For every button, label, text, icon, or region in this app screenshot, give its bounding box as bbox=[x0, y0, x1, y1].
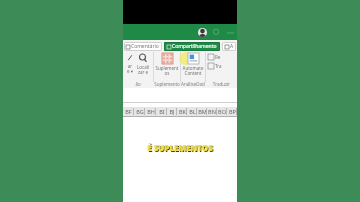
staticText: BH bbox=[147, 108, 155, 115]
staticText: BL bbox=[189, 108, 196, 115]
staticText: É SUPLEMENTOS bbox=[148, 143, 214, 154]
staticText: BK bbox=[179, 108, 186, 115]
staticText: Traduzir bbox=[206, 81, 237, 87]
button[interactable]: ar e ▾ bbox=[127, 53, 133, 75]
button[interactable]: Tra bbox=[208, 63, 222, 69]
button[interactable]: BJ bbox=[167, 107, 177, 116]
staticText: ar e ▾ bbox=[127, 63, 133, 75]
staticText: BO bbox=[218, 108, 226, 115]
button[interactable]: Comentários bbox=[124, 42, 162, 51]
button[interactable]: BM bbox=[197, 107, 207, 116]
button[interactable]: BK bbox=[177, 107, 187, 116]
staticText: BP bbox=[229, 108, 236, 115]
staticText: Automate Content bbox=[182, 65, 204, 77]
button[interactable]: Minimize bbox=[226, 28, 235, 37]
staticText: BF bbox=[125, 108, 132, 115]
staticText: BN bbox=[208, 108, 216, 115]
button[interactable]: Re bbox=[208, 54, 221, 60]
button[interactable]: BL bbox=[187, 107, 197, 116]
button[interactable]: BG bbox=[134, 107, 145, 116]
staticText: BI bbox=[159, 108, 165, 115]
button[interactable]: BF bbox=[123, 107, 134, 116]
button[interactable]: BP bbox=[227, 107, 237, 116]
button[interactable]: Localizar e Selecionar ▾ bbox=[136, 53, 150, 76]
staticText: Tra bbox=[215, 63, 222, 69]
button[interactable]: BN bbox=[207, 107, 217, 116]
staticText: Compartilhamento bbox=[172, 43, 217, 50]
button[interactable]: A bbox=[222, 42, 236, 51]
button[interactable]: Search bbox=[212, 28, 221, 37]
staticText: A bbox=[230, 43, 234, 50]
staticText: BG bbox=[136, 108, 144, 115]
staticText: AnáliseDados bbox=[181, 81, 205, 87]
button[interactable]: Suplementos bbox=[155, 53, 179, 77]
staticText: BJ bbox=[169, 108, 175, 115]
button[interactable]: BH bbox=[145, 107, 156, 116]
button[interactable]: Automate Content bbox=[182, 53, 204, 77]
button[interactable]: BO bbox=[217, 107, 227, 116]
staticText: É SUPLEMENTOS bbox=[147, 142, 213, 153]
button[interactable]: Compartilhamento bbox=[164, 42, 220, 51]
button[interactable]: BI bbox=[156, 107, 167, 116]
staticText: Suplementos bbox=[155, 65, 179, 77]
staticText: Comentários bbox=[131, 43, 160, 50]
button[interactable]: Account bbox=[198, 28, 207, 37]
staticText: Suplementos bbox=[154, 81, 180, 87]
staticText: Re bbox=[215, 54, 221, 60]
staticText: ão bbox=[123, 81, 153, 87]
staticText: BM bbox=[198, 108, 207, 115]
staticText: Localizar e Selecionar ▾ bbox=[136, 64, 150, 76]
